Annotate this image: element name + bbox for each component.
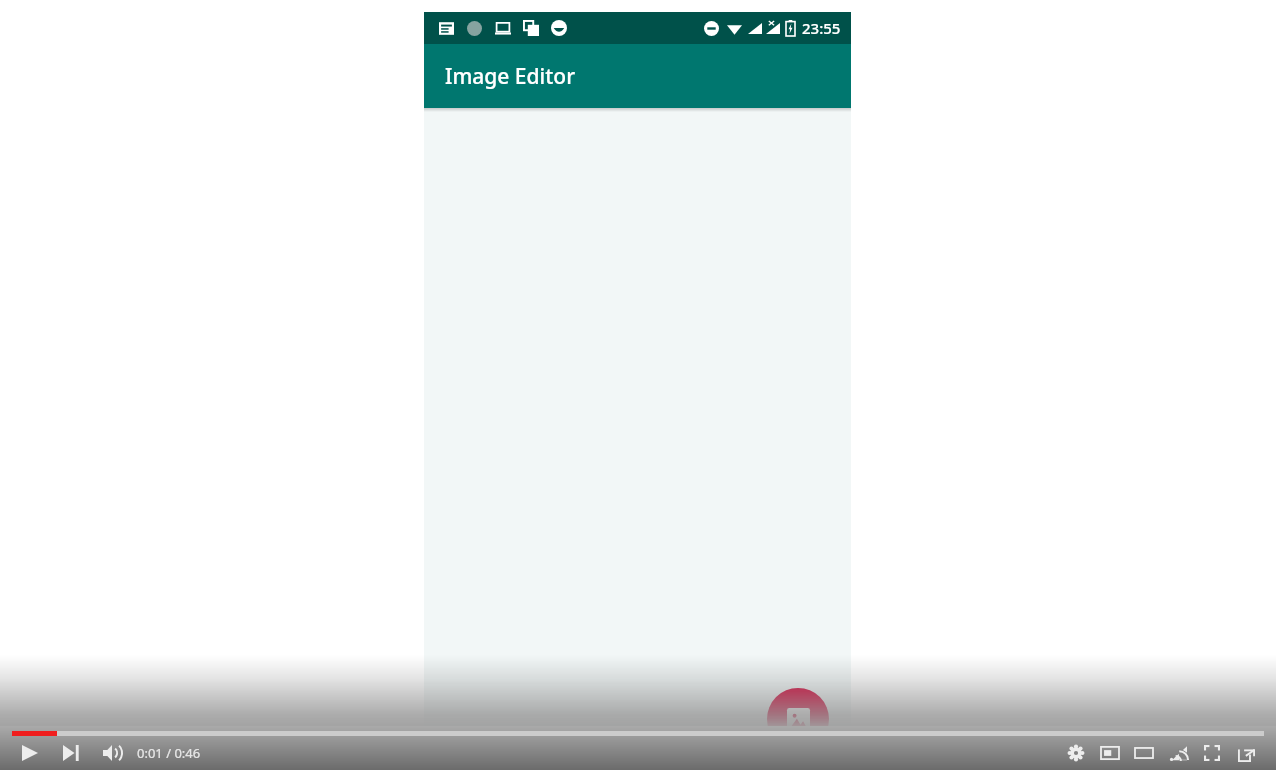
button[interactable]: Theater mode xyxy=(1127,736,1161,770)
staticText: Image Editor xyxy=(445,62,576,91)
button[interactable]: Miniplayer xyxy=(1093,736,1127,770)
button[interactable]: Play xyxy=(13,736,47,770)
button[interactable]: Next video xyxy=(54,736,88,770)
button[interactable]: Settings xyxy=(1059,736,1093,770)
staticText: 23:55 xyxy=(802,18,841,38)
button[interactable]: Mute xyxy=(95,736,129,770)
button[interactable]: Full screen xyxy=(1195,736,1229,770)
button[interactable]: Cast xyxy=(1161,736,1195,770)
button[interactable]: Pick image xyxy=(767,688,829,750)
button[interactable]: Watch on YouTube xyxy=(1229,736,1263,770)
staticText: 0:01 / 0:46 xyxy=(137,744,201,762)
